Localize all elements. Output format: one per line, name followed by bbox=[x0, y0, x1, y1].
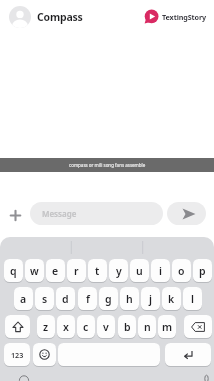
button[interactable]: w bbox=[25, 259, 44, 282]
staticText: z bbox=[43, 320, 49, 334]
staticText: b bbox=[124, 320, 131, 334]
button[interactable] bbox=[5, 315, 30, 338]
staticText: j bbox=[149, 292, 152, 306]
button[interactable]: a bbox=[14, 287, 33, 310]
button[interactable]: s bbox=[35, 287, 54, 310]
button[interactable]: l bbox=[183, 287, 202, 310]
button[interactable] bbox=[167, 202, 206, 225]
staticText: Compass bbox=[37, 10, 83, 24]
button[interactable]: h bbox=[120, 287, 139, 310]
staticText: d bbox=[62, 292, 69, 306]
staticText: q bbox=[10, 264, 17, 278]
staticText: e bbox=[52, 264, 59, 278]
button[interactable] bbox=[10, 210, 21, 221]
staticText: g bbox=[105, 292, 112, 306]
button[interactable]: i bbox=[151, 259, 170, 282]
staticText: u bbox=[136, 264, 143, 278]
staticText: i bbox=[159, 264, 162, 278]
button[interactable] bbox=[9, 6, 31, 28]
button[interactable]: k bbox=[162, 287, 181, 310]
staticText: h bbox=[126, 292, 133, 306]
staticText: c bbox=[83, 320, 89, 334]
staticText: n bbox=[144, 320, 151, 334]
staticText: v bbox=[103, 320, 109, 334]
button[interactable]: Compass bbox=[37, 8, 95, 25]
button[interactable]: TextingStory bbox=[162, 9, 212, 24]
button[interactable]: x bbox=[57, 315, 75, 338]
button[interactable]: Message bbox=[30, 202, 163, 225]
button[interactable]: c bbox=[77, 315, 95, 338]
staticText: t bbox=[95, 264, 100, 278]
button[interactable]: n bbox=[138, 315, 156, 338]
staticText: m bbox=[162, 320, 173, 334]
button[interactable] bbox=[33, 343, 56, 366]
staticText: f bbox=[86, 292, 90, 306]
staticText: l bbox=[191, 292, 194, 306]
staticText: w bbox=[30, 264, 39, 278]
button[interactable] bbox=[165, 343, 211, 366]
staticText: k bbox=[168, 292, 175, 306]
staticText: y bbox=[116, 264, 122, 278]
button[interactable]: r bbox=[67, 259, 86, 282]
staticText: r bbox=[74, 264, 79, 278]
button[interactable]: j bbox=[141, 287, 160, 310]
staticText: x bbox=[63, 320, 69, 334]
staticText: Message bbox=[42, 208, 77, 219]
staticText: compass or mili song fans assemble bbox=[69, 162, 146, 168]
button[interactable]: e bbox=[46, 259, 65, 282]
button[interactable]: o bbox=[172, 259, 191, 282]
button[interactable]: t bbox=[88, 259, 107, 282]
button[interactable] bbox=[58, 343, 160, 366]
button[interactable]: u bbox=[130, 259, 149, 282]
button[interactable] bbox=[184, 315, 212, 338]
staticText: TextingStory bbox=[162, 12, 207, 22]
button[interactable]: 123 bbox=[4, 343, 30, 366]
button[interactable]: g bbox=[99, 287, 118, 310]
button[interactable]: b bbox=[118, 315, 136, 338]
button[interactable]: y bbox=[109, 259, 128, 282]
staticText: p bbox=[199, 264, 206, 278]
staticText: o bbox=[178, 264, 185, 278]
button[interactable]: m bbox=[158, 315, 176, 338]
button[interactable]: d bbox=[56, 287, 75, 310]
button[interactable]: z bbox=[37, 315, 55, 338]
staticText: s bbox=[42, 292, 48, 306]
button[interactable]: p bbox=[193, 259, 212, 282]
button[interactable]: f bbox=[78, 287, 97, 310]
staticText: 123 bbox=[11, 350, 24, 360]
button[interactable]: v bbox=[97, 315, 115, 338]
staticText: a bbox=[20, 292, 27, 306]
button[interactable]: q bbox=[4, 259, 23, 282]
